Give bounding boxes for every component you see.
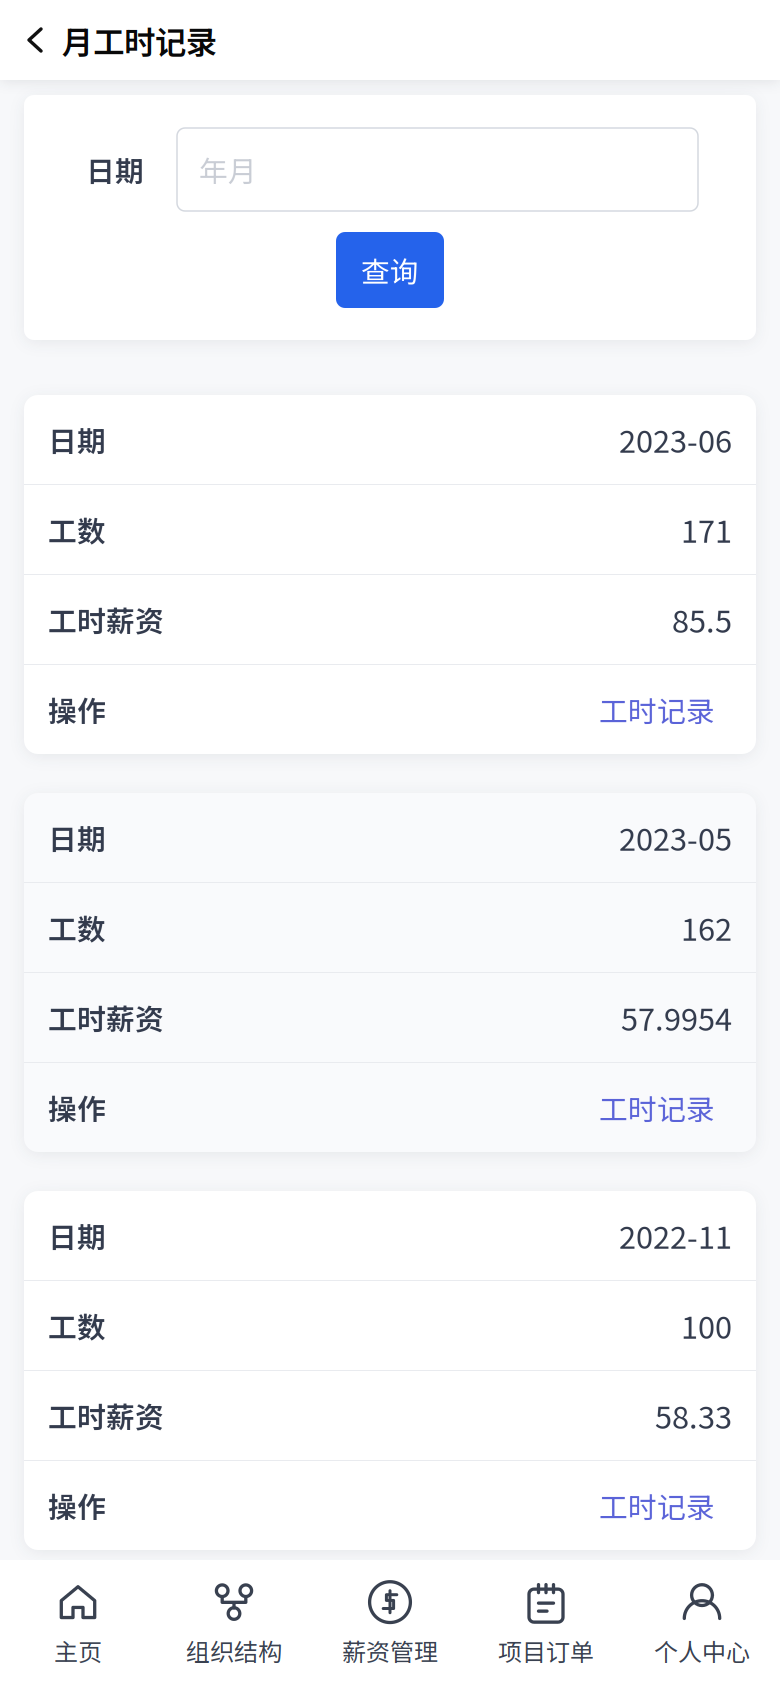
button[interactable]: Back	[8, 0, 62, 80]
staticText: 工时记录	[599, 1087, 715, 1128]
staticText: 查询	[361, 249, 419, 291]
staticText: 工时薪资	[48, 997, 164, 1038]
staticText: 个人中心	[654, 1633, 750, 1668]
button[interactable]: 操作	[24, 1461, 756, 1550]
staticText: 工数	[48, 1305, 106, 1346]
staticText: 工数	[48, 509, 106, 550]
button[interactable]: 组织结构	[156, 1560, 312, 1688]
staticText: 2022-11	[619, 1213, 732, 1258]
staticText: 操作	[48, 1087, 106, 1128]
button[interactable]: 项目订单	[468, 1560, 624, 1688]
staticText: 工时薪资	[48, 1395, 164, 1436]
staticText: 58.33	[655, 1393, 732, 1438]
staticText: 171	[681, 507, 732, 552]
staticText: 主页	[54, 1633, 102, 1668]
button[interactable]: 个人中心	[624, 1560, 780, 1688]
staticText: 年月	[199, 149, 257, 190]
staticText: 月工时记录	[62, 17, 217, 63]
button[interactable]: 查询	[336, 232, 444, 308]
staticText: 2023-06	[619, 417, 732, 462]
staticText: 操作	[48, 689, 106, 730]
button[interactable]: 主页	[0, 1560, 156, 1688]
staticText: 项目订单	[498, 1633, 594, 1668]
button[interactable]: 薪资管理	[312, 1560, 468, 1688]
staticText: 工时记录	[599, 689, 715, 730]
staticText: 工数	[48, 907, 106, 948]
staticText: 100	[681, 1303, 732, 1348]
staticText: 日期	[48, 419, 106, 460]
staticText: 日期	[48, 1215, 106, 1256]
staticText: 操作	[48, 1485, 106, 1526]
staticText: 组织结构	[186, 1633, 282, 1668]
staticText: 日期	[86, 149, 144, 190]
staticText: 2023-05	[619, 815, 732, 860]
button[interactable]: 操作	[24, 1063, 756, 1152]
button[interactable]: 操作	[24, 665, 756, 754]
staticText: 工时记录	[599, 1485, 715, 1526]
staticText: 日期	[48, 817, 106, 858]
staticText: 工时薪资	[48, 599, 164, 640]
staticText: 162	[681, 905, 732, 950]
staticText: 85.5	[672, 597, 732, 642]
staticText: 薪资管理	[342, 1633, 438, 1668]
staticText: 57.9954	[621, 995, 732, 1040]
